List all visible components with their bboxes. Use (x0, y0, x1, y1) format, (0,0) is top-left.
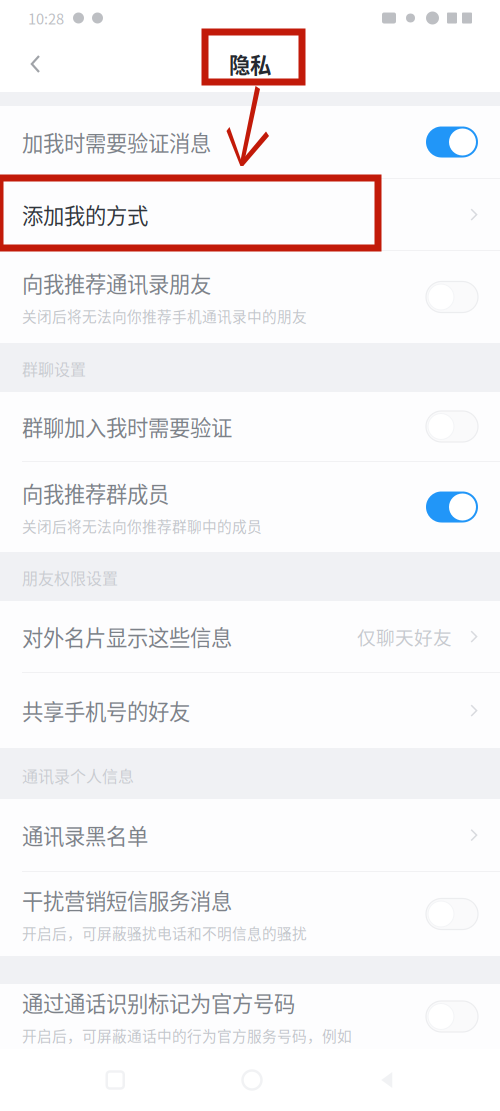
button[interactable]: 共享手机号的好友 (0, 673, 500, 748)
button[interactable]: Recents (95, 1059, 136, 1100)
button[interactable]: 加我时需要验证消息 (0, 106, 500, 178)
staticText: 开启后，可屏蔽通话中的行为官方服务号码，例如 (22, 1025, 352, 1046)
staticText: 10:28 (28, 7, 64, 29)
button[interactable]: 向我推荐群成员 (0, 462, 500, 552)
staticText: 隐私 (229, 49, 271, 79)
staticText: 朋友权限设置 (22, 566, 118, 589)
button[interactable]: 群聊加入我时需要验证 (0, 392, 500, 461)
staticText: 添加我的方式 (22, 199, 148, 230)
button[interactable]: 向我推荐通讯录朋友 (0, 251, 500, 343)
staticText: 群聊设置 (22, 357, 86, 380)
button[interactable]: 对外名片显示这些信息 (0, 601, 500, 672)
staticText: 通讯录个人信息 (22, 764, 134, 787)
button[interactable]: Back (368, 1059, 405, 1101)
button[interactable]: Home (230, 1058, 273, 1101)
staticText: 干扰营销短信服务消息 (22, 884, 232, 915)
button[interactable]: Back (14, 40, 57, 87)
staticText: 通讯录黑名单 (22, 820, 148, 850)
staticText: 加我时需要验证消息 (22, 127, 211, 157)
staticText: 开启后，可屏蔽骚扰电话和不明信息的骚扰 (22, 922, 307, 943)
staticText: 群聊加入我时需要验证 (22, 411, 232, 442)
staticText: 通过通话识别标记为官方号码 (22, 987, 295, 1018)
staticText: 关闭后将无法向你推荐手机通讯录中的朋友 (22, 305, 307, 326)
button[interactable]: 添加我的方式 (0, 179, 500, 250)
button[interactable]: 通过通话识别标记为官方号码 (0, 984, 500, 1049)
staticText: 共享手机号的好友 (22, 695, 190, 726)
button[interactable]: 通讯录黑名单 (0, 799, 500, 871)
staticText: 向我推荐群成员 (22, 477, 169, 508)
button[interactable]: 干扰营销短信服务消息 (0, 872, 500, 956)
staticText: 对外名片显示这些信息 (22, 621, 232, 652)
staticText: 关闭后将无法向你推荐群聊中的成员 (22, 515, 262, 536)
staticText: 向我推荐通讯录朋友 (22, 267, 211, 298)
staticText: 仅聊天好友 (357, 623, 452, 650)
